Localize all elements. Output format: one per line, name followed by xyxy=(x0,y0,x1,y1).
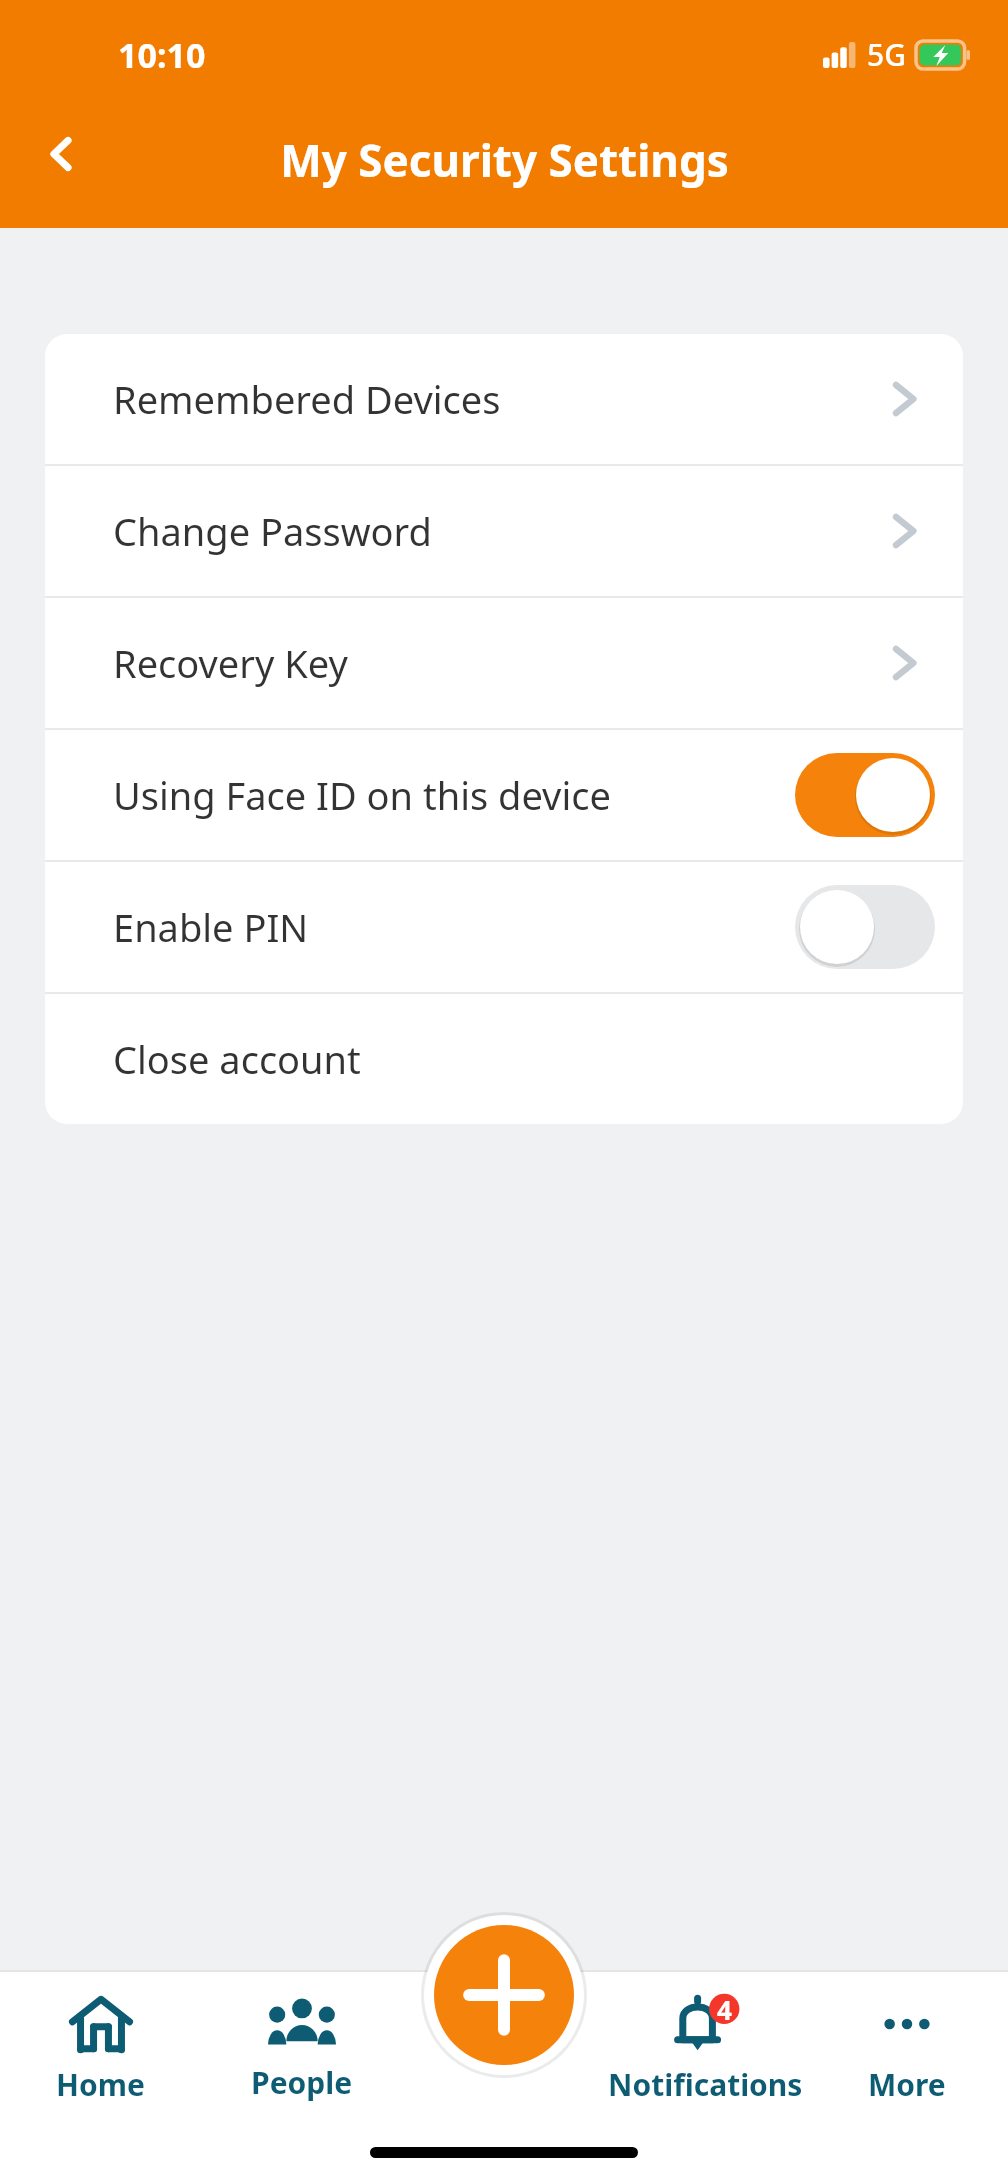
button[interactable]: People xyxy=(201,1970,402,2130)
button[interactable]: Recovery Key xyxy=(45,598,963,728)
staticText: Enable PIN xyxy=(113,901,795,953)
staticText: 4 xyxy=(717,1992,732,2027)
staticText: 10:10 xyxy=(118,32,206,78)
button[interactable]: Add xyxy=(421,1912,587,2078)
button[interactable]: Enable PIN xyxy=(45,862,963,992)
button[interactable]: Using Face ID on this device xyxy=(45,730,963,860)
staticText: Close account xyxy=(113,1033,361,1085)
button[interactable]: Back xyxy=(24,116,100,192)
staticText: Notifications xyxy=(608,2064,803,2105)
staticText: People xyxy=(251,2062,353,2103)
button[interactable]: More xyxy=(806,1970,1008,2130)
staticText: More xyxy=(868,2064,946,2105)
staticText: Remembered Devices xyxy=(113,373,891,425)
staticText: Recovery Key xyxy=(113,637,891,689)
staticText: My Security Settings xyxy=(280,130,729,190)
button[interactable]: 4 xyxy=(604,1970,806,2130)
staticText: Using Face ID on this device xyxy=(113,769,795,821)
button[interactable]: Remembered Devices xyxy=(45,334,963,464)
button[interactable]: Close account xyxy=(45,994,963,1124)
button[interactable]: Change Password xyxy=(45,466,963,596)
staticText: 5G xyxy=(867,34,906,75)
staticText: Change Password xyxy=(113,505,891,557)
button[interactable]: Home xyxy=(0,1970,201,2130)
staticText: Home xyxy=(56,2064,145,2105)
